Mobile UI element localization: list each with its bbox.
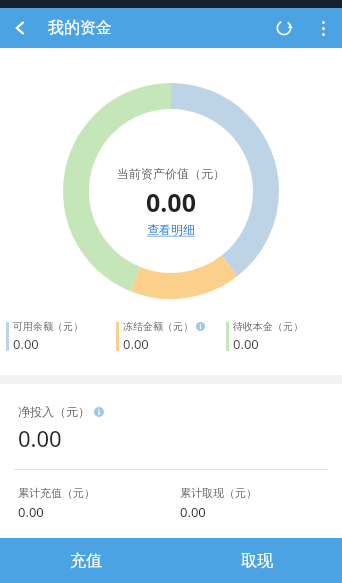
button[interactable]: 可用余额（元） [6,320,116,353]
staticText: 0.00 [13,335,39,353]
staticText: 0.00 [146,185,196,219]
staticText: 净投入（元） [18,404,90,419]
button[interactable]: Refresh [264,8,304,48]
staticText: 冻结金额（元） [123,320,193,333]
button[interactable]: 取现 [171,538,342,583]
button[interactable]: 查看明细 [147,222,195,237]
staticText: 查看明细 [147,222,195,237]
staticText: 累计充值（元） [18,486,95,500]
button[interactable]: 待收本金（元） [226,320,336,353]
button[interactable]: Back [0,8,40,48]
button[interactable]: 冻结金额（元） [116,320,226,353]
staticText: 0.00 [123,335,149,353]
button[interactable]: 充值 [0,538,171,583]
staticText: 当前资产价值（元） [117,166,225,181]
button[interactable]: 净投入（元） [0,384,342,469]
staticText: 我的资金 [48,18,112,38]
staticText: 可用余额（元） [13,320,83,333]
staticText: 0.00 [233,335,259,353]
staticText: 累计取现（元） [180,486,257,500]
button[interactable]: More options [304,9,342,47]
staticText: 0.00 [18,423,62,453]
staticText: 取现 [241,551,273,571]
staticText: 待收本金（元） [233,320,303,333]
staticText: 充值 [70,551,102,571]
staticText: 0.00 [18,503,44,521]
staticText: 0.00 [180,503,206,521]
